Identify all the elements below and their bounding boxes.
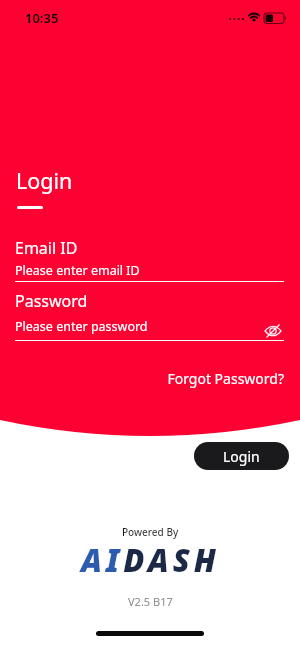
staticText: V2.5 B17 [128,594,173,609]
button[interactable]: Please enter email ID [15,262,284,281]
staticText: Login [16,166,73,195]
button[interactable] [262,322,284,340]
staticText: Email ID [15,237,78,259]
staticText: Please enter password [15,318,148,335]
staticText: Powered By [122,525,179,539]
button[interactable]: Login [194,442,289,470]
staticText: 10:35 [25,9,59,27]
button[interactable]: Forgot Password? [160,368,284,388]
button[interactable]: Please enter password [15,318,284,340]
staticText: Login [223,447,260,466]
staticText: Please enter email ID [15,262,140,279]
staticText: Forgot Password? [167,369,284,388]
staticText: Password [15,290,88,312]
staticText: AIDASH [81,539,220,581]
